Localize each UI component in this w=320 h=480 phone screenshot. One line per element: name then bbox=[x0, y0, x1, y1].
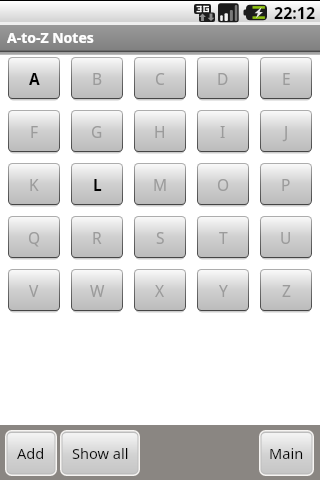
staticText: H bbox=[154, 121, 166, 142]
button[interactable]: Z bbox=[260, 269, 312, 313]
staticText: V bbox=[29, 280, 39, 301]
staticText: S bbox=[156, 227, 165, 248]
button[interactable]: Q bbox=[8, 216, 60, 260]
staticText: P bbox=[281, 174, 291, 195]
staticText: Z bbox=[282, 280, 291, 301]
staticText: Add bbox=[17, 443, 45, 463]
staticText: A bbox=[29, 68, 40, 89]
button[interactable]: T bbox=[197, 216, 249, 260]
staticText: O bbox=[217, 174, 230, 195]
staticText: X bbox=[155, 280, 165, 301]
button[interactable]: C bbox=[134, 57, 186, 101]
staticText: L bbox=[93, 174, 102, 195]
button[interactable]: O bbox=[197, 163, 249, 207]
button[interactable]: B bbox=[71, 57, 123, 101]
staticText: R bbox=[92, 227, 102, 248]
staticText: Y bbox=[219, 280, 228, 301]
staticText: C bbox=[155, 68, 165, 89]
button[interactable]: X bbox=[134, 269, 186, 313]
button[interactable]: W bbox=[71, 269, 123, 313]
staticText: Q bbox=[28, 227, 41, 248]
staticText: B bbox=[92, 68, 103, 89]
staticText: I bbox=[220, 121, 226, 142]
staticText: E bbox=[282, 68, 291, 89]
staticText: K bbox=[29, 174, 39, 195]
staticText: Main bbox=[269, 443, 304, 463]
button[interactable]: Y bbox=[197, 269, 249, 313]
staticText: D bbox=[217, 68, 229, 89]
button[interactable]: A bbox=[8, 57, 60, 101]
staticText: Show all bbox=[72, 443, 129, 463]
button[interactable]: R bbox=[71, 216, 123, 260]
button[interactable]: I bbox=[197, 110, 249, 154]
staticText: M bbox=[153, 174, 168, 195]
button[interactable]: V bbox=[8, 269, 60, 313]
staticText: T bbox=[219, 227, 228, 248]
staticText: G bbox=[91, 121, 103, 142]
button[interactable]: H bbox=[134, 110, 186, 154]
button[interactable]: D bbox=[197, 57, 249, 101]
button[interactable]: S bbox=[134, 216, 186, 260]
staticText: A-to-Z Notes bbox=[7, 28, 94, 47]
staticText: U bbox=[280, 227, 292, 248]
button[interactable]: Add bbox=[5, 430, 57, 476]
staticText: W bbox=[90, 280, 105, 301]
staticText: 22:12 bbox=[274, 2, 316, 24]
button[interactable]: Main bbox=[259, 430, 314, 476]
staticText: J bbox=[284, 121, 289, 142]
button[interactable]: J bbox=[260, 110, 312, 154]
button[interactable]: P bbox=[260, 163, 312, 207]
staticText: F bbox=[30, 121, 39, 142]
button[interactable]: K bbox=[8, 163, 60, 207]
button[interactable]: Show all bbox=[60, 430, 140, 476]
button[interactable]: G bbox=[71, 110, 123, 154]
button[interactable]: U bbox=[260, 216, 312, 260]
button[interactable]: L bbox=[71, 163, 123, 207]
button[interactable]: E bbox=[260, 57, 312, 101]
button[interactable]: M bbox=[134, 163, 186, 207]
button[interactable]: F bbox=[8, 110, 60, 154]
